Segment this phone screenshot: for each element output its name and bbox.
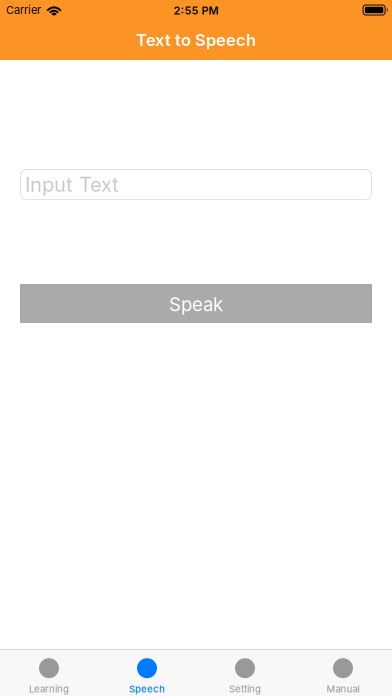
staticText: Manual	[326, 683, 359, 695]
button[interactable]: Input Text	[20, 169, 372, 200]
staticText: Carrier	[6, 3, 41, 17]
staticText: 2:55 PM	[173, 4, 218, 17]
button[interactable]: Speak	[20, 284, 372, 323]
button[interactable]: Speech	[98, 651, 196, 695]
staticText: Text to Speech	[136, 30, 256, 50]
button[interactable]: Learning	[0, 651, 98, 695]
button[interactable]: Manual	[294, 651, 392, 695]
staticText: Input Text	[25, 172, 119, 197]
button[interactable]: Setting	[196, 651, 294, 695]
staticText: Setting	[229, 683, 261, 695]
staticText: Speech	[129, 683, 165, 695]
staticText: Speak	[169, 293, 223, 316]
staticText: Learning	[29, 683, 69, 695]
